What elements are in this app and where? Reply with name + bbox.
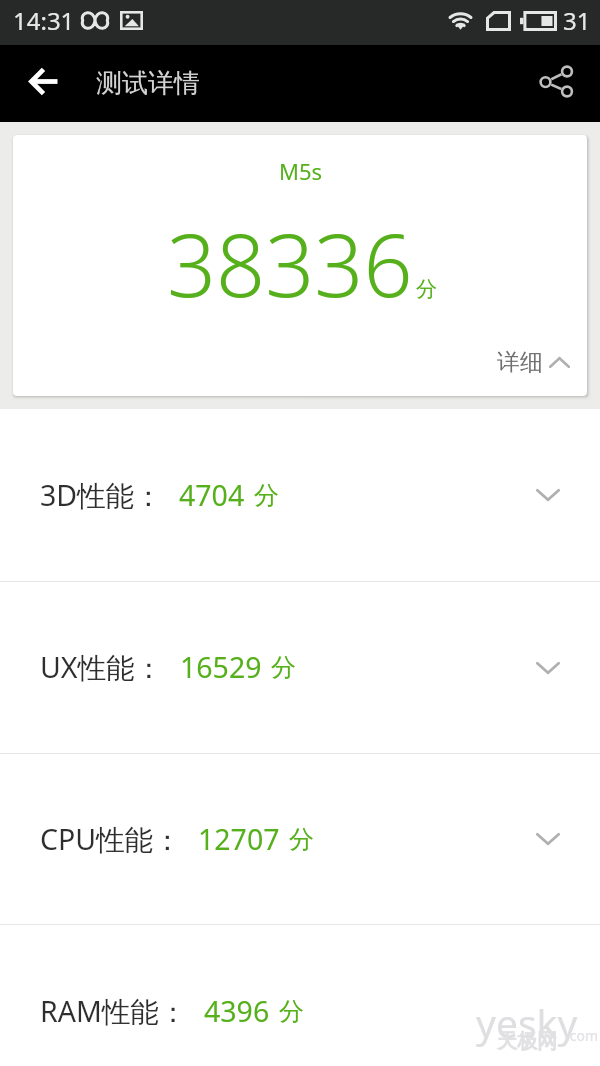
button[interactable]: CPU性能： — [0, 754, 600, 924]
staticText: 4704 — [179, 476, 245, 515]
staticText: RAM性能： — [40, 992, 188, 1031]
staticText: 详细 — [497, 348, 543, 377]
staticText: 分 — [279, 996, 304, 1027]
staticText: UX性能： — [40, 648, 164, 687]
staticText: 38336 — [167, 205, 413, 322]
button[interactable]: M5s — [13, 135, 587, 396]
staticText: 31 — [563, 4, 591, 37]
button[interactable]: 详细 — [497, 348, 570, 377]
staticText: 分 — [271, 652, 296, 683]
button[interactable]: Back — [16, 53, 72, 109]
staticText: 3D性能： — [40, 476, 163, 515]
staticText: yesky — [476, 996, 578, 1049]
staticText: M5s — [279, 156, 323, 186]
staticText: 4396 — [204, 992, 270, 1031]
staticText: CPU性能： — [40, 820, 182, 859]
staticText: .com — [566, 1026, 599, 1045]
staticText: 天极网 — [497, 1029, 557, 1054]
button[interactable]: 3D性能： — [0, 409, 600, 581]
staticText: 12707 — [198, 820, 280, 859]
button[interactable]: UX性能： — [0, 582, 600, 753]
staticText: 14:31 — [13, 4, 75, 37]
button[interactable]: Share — [528, 53, 584, 109]
staticText: 分 — [289, 824, 314, 855]
staticText: 测试详情 — [96, 67, 200, 100]
button[interactable]: RAM性能： — [0, 925, 600, 1066]
staticText: 分 — [254, 480, 279, 511]
staticText: 16529 — [180, 648, 262, 687]
staticText: 分 — [416, 276, 437, 302]
